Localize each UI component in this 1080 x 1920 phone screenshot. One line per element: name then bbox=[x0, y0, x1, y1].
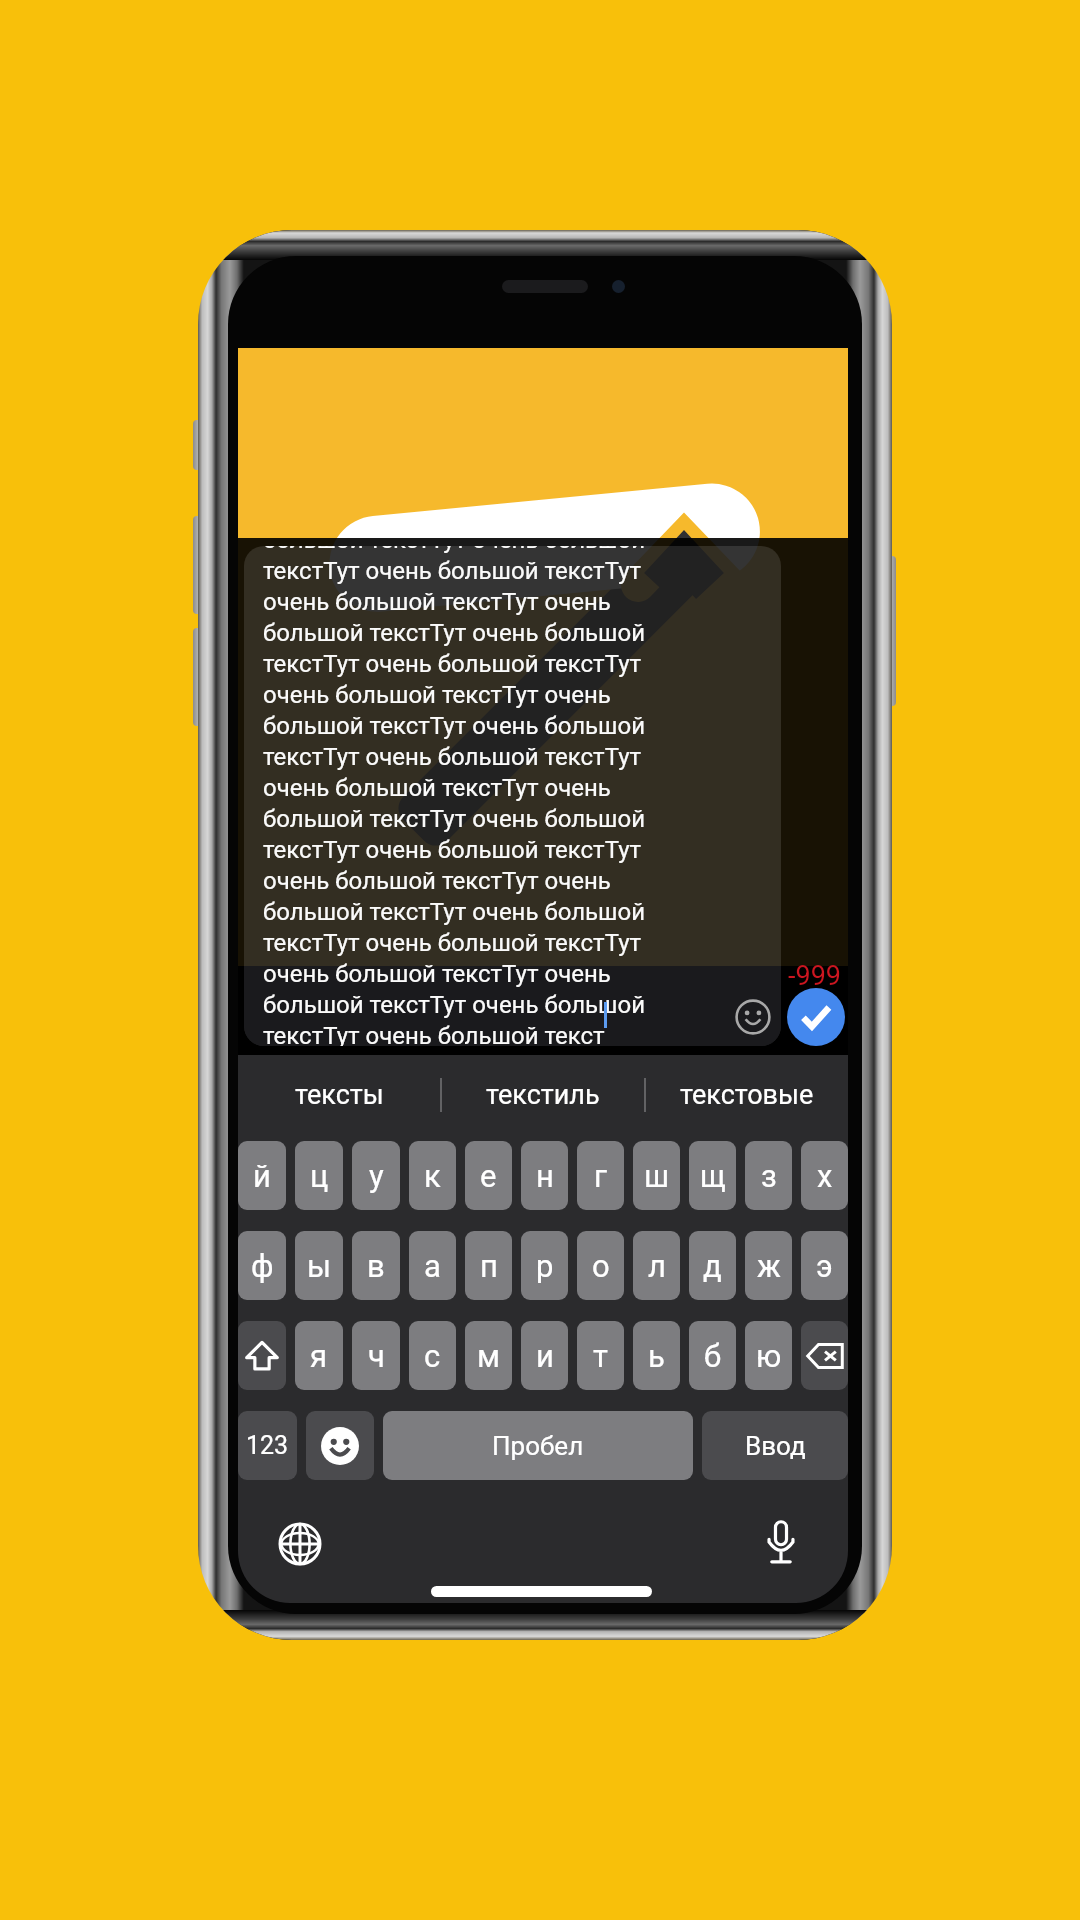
staticText: е bbox=[480, 1158, 497, 1194]
staticText: ж bbox=[757, 1248, 781, 1284]
button[interactable]: а bbox=[409, 1231, 456, 1300]
staticText: х bbox=[817, 1158, 833, 1194]
button[interactable]: у bbox=[352, 1141, 400, 1210]
button[interactable]: к bbox=[409, 1141, 456, 1210]
button[interactable]: 123 bbox=[238, 1411, 297, 1480]
button[interactable]: Send bbox=[787, 988, 845, 1046]
staticText: н bbox=[536, 1158, 554, 1194]
staticText: и bbox=[536, 1338, 554, 1374]
staticText: к bbox=[424, 1158, 441, 1194]
button[interactable]: з bbox=[745, 1141, 792, 1210]
staticText: -999 bbox=[788, 960, 841, 992]
button[interactable]: Пробел bbox=[383, 1411, 693, 1480]
button[interactable]: й bbox=[238, 1141, 286, 1210]
staticText: а bbox=[424, 1248, 441, 1284]
button[interactable]: л bbox=[633, 1231, 680, 1300]
staticText: р bbox=[536, 1248, 554, 1284]
staticText: текстовые bbox=[680, 1079, 814, 1111]
staticText: ю bbox=[756, 1338, 782, 1374]
button[interactable]: я bbox=[295, 1321, 343, 1390]
button[interactable]: н bbox=[521, 1141, 568, 1210]
button[interactable]: ж bbox=[745, 1231, 792, 1300]
button[interactable]: м bbox=[465, 1321, 512, 1390]
button[interactable]: ш bbox=[633, 1141, 680, 1210]
staticText: ь bbox=[648, 1338, 665, 1374]
button[interactable]: текстовые bbox=[646, 1055, 848, 1135]
staticText: й bbox=[253, 1158, 271, 1194]
button[interactable]: о bbox=[577, 1231, 624, 1300]
staticText: большой текстТут очень большой текстТут … bbox=[263, 546, 646, 1046]
button[interactable]: в bbox=[352, 1231, 400, 1300]
button[interactable]: ь bbox=[633, 1321, 680, 1390]
staticText: ц bbox=[310, 1158, 329, 1194]
button[interactable]: е bbox=[465, 1141, 512, 1210]
staticText: тексты bbox=[295, 1079, 384, 1111]
button[interactable]: т bbox=[577, 1321, 624, 1390]
button[interactable]: р bbox=[521, 1231, 568, 1300]
button[interactable]: текстиль bbox=[442, 1055, 644, 1135]
staticText: ш bbox=[644, 1158, 670, 1194]
staticText: ч bbox=[368, 1338, 385, 1374]
button[interactable]: ф bbox=[238, 1231, 286, 1300]
button[interactable]: с bbox=[409, 1321, 456, 1390]
button[interactable]: Emoji keyboard bbox=[306, 1411, 374, 1480]
staticText: о bbox=[592, 1248, 610, 1284]
button[interactable]: Emoji bbox=[729, 993, 777, 1041]
staticText: л bbox=[648, 1248, 666, 1284]
button[interactable]: тексты bbox=[238, 1055, 440, 1135]
staticText: Пробел bbox=[492, 1431, 584, 1461]
staticText: з bbox=[761, 1158, 777, 1194]
staticText: я bbox=[310, 1338, 328, 1374]
button[interactable]: д bbox=[689, 1231, 736, 1300]
button[interactable]: б bbox=[689, 1321, 736, 1390]
staticText: б bbox=[704, 1338, 722, 1374]
button[interactable]: э bbox=[801, 1231, 848, 1300]
button[interactable]: г bbox=[577, 1141, 624, 1210]
button[interactable]: Voice input bbox=[753, 1514, 809, 1570]
button[interactable]: х bbox=[801, 1141, 848, 1210]
button[interactable]: Change keyboard language bbox=[272, 1516, 328, 1572]
button[interactable]: Backspace bbox=[801, 1321, 848, 1390]
staticText: г bbox=[594, 1158, 608, 1194]
button[interactable]: Ввод bbox=[702, 1411, 848, 1480]
staticText: у bbox=[369, 1158, 384, 1194]
button[interactable]: ч bbox=[352, 1321, 400, 1390]
button[interactable]: ю bbox=[745, 1321, 792, 1390]
staticText: п bbox=[480, 1248, 498, 1284]
staticText: д bbox=[703, 1248, 722, 1284]
staticText: ы bbox=[307, 1248, 332, 1284]
button[interactable]: и bbox=[521, 1321, 568, 1390]
staticText: 123 bbox=[246, 1431, 289, 1460]
staticText: щ bbox=[700, 1158, 726, 1194]
staticText: текстиль bbox=[486, 1079, 600, 1111]
button[interactable]: щ bbox=[689, 1141, 736, 1210]
button[interactable]: ы bbox=[295, 1231, 343, 1300]
button[interactable]: Shift bbox=[238, 1321, 286, 1390]
staticText: т bbox=[593, 1338, 608, 1374]
button[interactable]: п bbox=[465, 1231, 512, 1300]
staticText: ф bbox=[251, 1248, 274, 1284]
button[interactable]: ц bbox=[295, 1141, 343, 1210]
staticText: м bbox=[477, 1338, 500, 1374]
staticText: с bbox=[424, 1338, 441, 1374]
staticText: в bbox=[367, 1248, 385, 1284]
staticText: Ввод bbox=[745, 1431, 806, 1461]
staticText: э bbox=[816, 1248, 833, 1284]
